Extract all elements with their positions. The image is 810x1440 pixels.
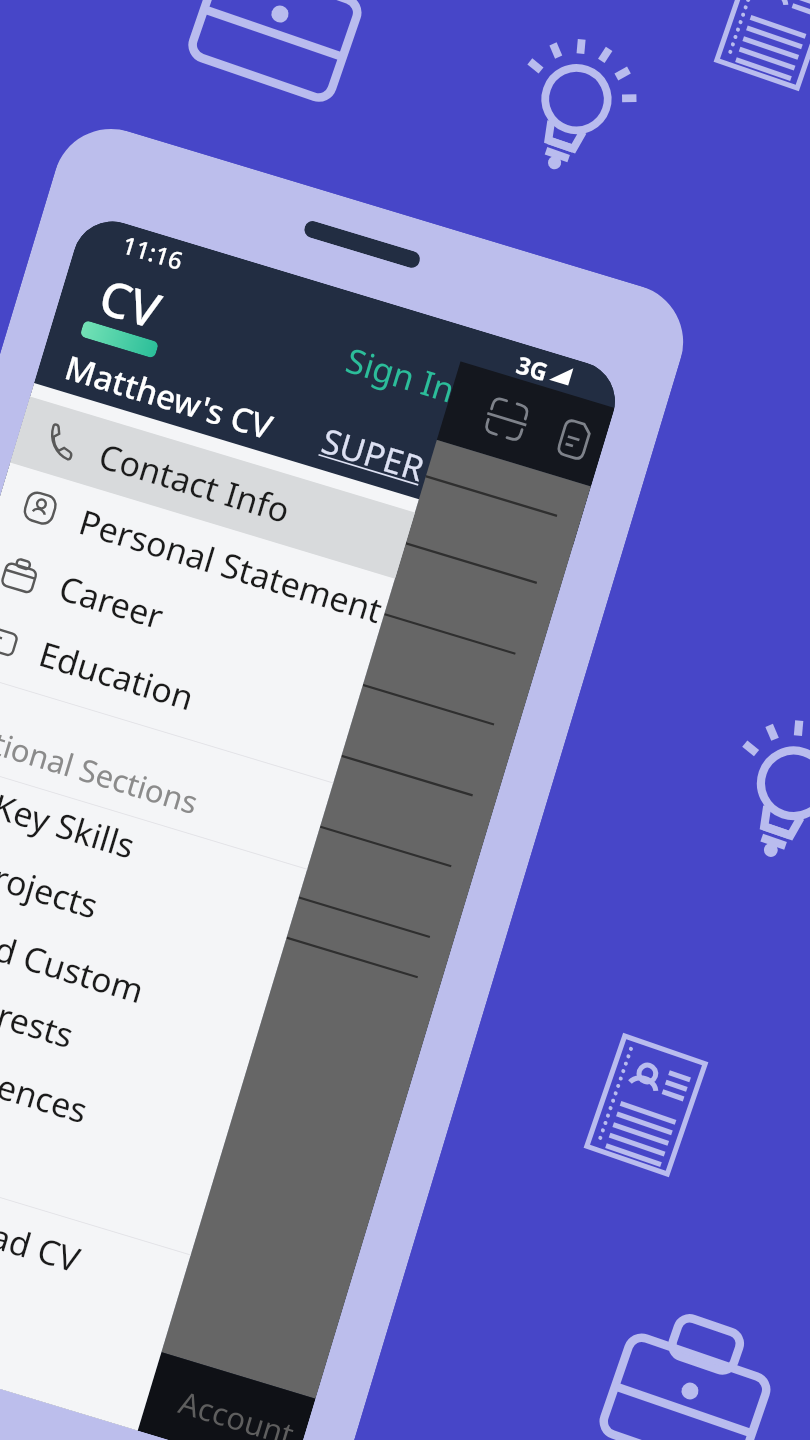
button[interactable]: Save	[0, 841, 202, 990]
button[interactable]: Account	[157, 1358, 316, 1440]
button[interactable]: Key Skills	[0, 747, 309, 929]
button[interactable]: Document	[546, 412, 601, 467]
button[interactable]: Add Custom	[0, 877, 270, 1059]
button[interactable]: Interests	[0, 937, 252, 1119]
staticText: 11:16	[118, 227, 187, 277]
staticText: SUPER	[317, 417, 430, 491]
staticText: Key Skills	[0, 783, 141, 869]
staticText: Sign In	[341, 336, 460, 413]
button[interactable]: Career	[0, 528, 375, 711]
staticText: Personal Statement	[74, 498, 389, 633]
staticText: 3G	[513, 348, 553, 388]
button[interactable]: Contact Info	[10, 396, 415, 579]
button[interactable]: Projects	[0, 812, 289, 994]
staticText: Matthew's CV	[60, 345, 279, 450]
staticText: Add Custom	[0, 913, 149, 1013]
staticText: Projects	[0, 848, 104, 929]
button[interactable]: Personal Statement	[0, 462, 395, 645]
staticText: Account	[174, 1381, 299, 1440]
staticText: Education	[34, 630, 199, 720]
staticText: CV	[92, 263, 169, 343]
button[interactable]: Advice	[22, 1317, 181, 1436]
staticText: Career	[54, 564, 169, 639]
button[interactable]: Education	[0, 595, 355, 777]
button[interactable]: Download CV	[0, 1141, 190, 1323]
button[interactable]: Jobs	[0, 1276, 46, 1396]
staticText: Optional Sections	[0, 709, 204, 823]
button[interactable]: Scan	[479, 392, 534, 447]
staticText: References	[0, 1038, 93, 1133]
staticText: Contact Info	[94, 432, 296, 533]
button[interactable]: References	[0, 1002, 232, 1185]
staticText: Advice	[50, 1343, 153, 1411]
button[interactable]: Sign In	[333, 329, 468, 420]
staticText: Interests	[0, 973, 80, 1058]
button[interactable]: SUPER	[311, 415, 436, 493]
staticText: Download CV	[0, 1177, 86, 1283]
button[interactable]: Photo	[0, 1066, 213, 1249]
